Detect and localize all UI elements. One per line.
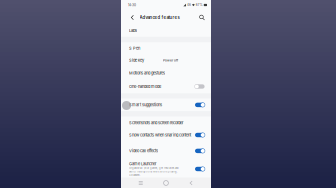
button[interactable]: Screenshots and screen recorder <box>121 117 211 129</box>
button[interactable]: S Pen <box>121 42 211 54</box>
button[interactable]: One-handed mode <box>121 80 211 93</box>
staticText: Organise all your games, get resources a… <box>129 167 179 170</box>
staticText: 67% <box>196 3 203 7</box>
staticText: Game Launcher <box>129 161 157 166</box>
staticText: avoid interruptions while you're playing… <box>129 170 178 173</box>
staticText: Screenshots and screen recorder <box>129 120 184 125</box>
staticText: Show contacts when sharing content <box>129 133 191 137</box>
staticText: 46 <box>187 3 191 7</box>
button[interactable]: Smart suggestions <box>121 99 211 111</box>
button[interactable]: Recent apps <box>135 177 146 188</box>
button[interactable]: Home <box>160 177 171 188</box>
button[interactable]: Show contacts when sharing content <box>121 129 211 141</box>
staticText: Labs <box>129 28 137 33</box>
button[interactable]: Labs <box>121 24 211 37</box>
button[interactable]: Back <box>128 11 137 24</box>
staticText: Video call effects <box>129 148 158 153</box>
staticText: Power off <box>163 58 178 62</box>
staticText: Motions and gestures <box>129 71 165 75</box>
staticText: Advanced. <box>129 174 141 177</box>
staticText: Side key <box>129 58 144 63</box>
staticText: S Pen <box>129 46 140 51</box>
button[interactable]: Search <box>198 11 206 24</box>
button[interactable]: Back <box>186 177 197 188</box>
staticText: Advanced features <box>139 15 179 20</box>
staticText: One-handed mode <box>129 84 161 89</box>
button[interactable]: Motions and gestures <box>121 66 211 80</box>
button[interactable]: Video call effects <box>121 141 211 160</box>
staticText: Smart suggestions <box>129 102 162 107</box>
button[interactable]: Game Launcher <box>121 160 211 177</box>
button[interactable]: Side key <box>121 54 211 66</box>
staticText: 14:30 <box>128 3 136 7</box>
